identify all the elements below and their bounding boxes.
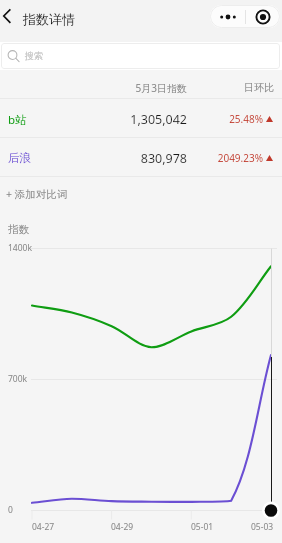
- staticText: + 添加对比词: [6, 187, 68, 201]
- staticText: 04-29: [111, 521, 134, 533]
- staticText: 05-03: [251, 521, 274, 533]
- staticText: 2049.23%: [0, 151, 263, 165]
- staticText: 1,305,042: [0, 111, 187, 128]
- button[interactable]: b站: [0, 99, 282, 138]
- staticText: 05-01: [191, 521, 214, 533]
- button[interactable]: Back: [0, 0, 26, 26]
- staticText: 后浪: [8, 151, 31, 165]
- staticText: 700k: [8, 373, 28, 385]
- staticText: 25.48%: [0, 112, 263, 126]
- staticText: 日环比: [0, 81, 274, 94]
- staticText: 指数详情: [23, 11, 75, 27]
- button[interactable]: More options: [210, 5, 245, 28]
- staticText: 指数: [8, 223, 29, 236]
- button[interactable]: + 添加对比词: [6, 184, 68, 204]
- button[interactable]: 搜索: [1, 43, 280, 69]
- staticText: 04-27: [32, 521, 55, 533]
- staticText: 1400k: [8, 242, 32, 254]
- staticText: 5月3日指数: [0, 81, 187, 95]
- staticText: b站: [8, 112, 27, 128]
- staticText: 830,978: [0, 150, 187, 167]
- staticText: 0: [8, 504, 13, 516]
- button[interactable]: 后浪: [0, 138, 282, 177]
- button[interactable]: Close: [246, 5, 280, 28]
- staticText: 搜索: [25, 50, 43, 61]
